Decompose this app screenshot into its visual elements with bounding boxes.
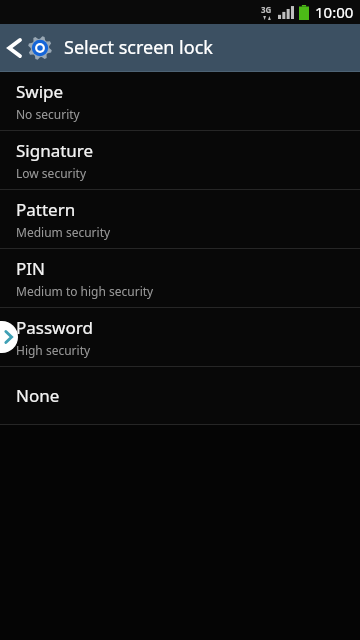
button[interactable]: PIN — [0, 249, 360, 307]
button[interactable]: Swipe — [0, 72, 360, 130]
staticText: Select screen lock — [64, 35, 213, 60]
staticText: Password — [16, 316, 93, 339]
staticText: 3G — [261, 4, 272, 15]
staticText: None — [16, 384, 60, 407]
staticText: Signature — [16, 139, 94, 162]
button[interactable]: Signature — [0, 131, 360, 189]
staticText: Medium security — [16, 224, 111, 240]
button[interactable]: Password — [0, 308, 360, 366]
staticText: 10:00 — [315, 2, 354, 22]
staticText: Swipe — [16, 80, 64, 103]
staticText: Low security — [16, 165, 87, 181]
staticText: High security — [16, 342, 91, 358]
staticText: Pattern — [16, 198, 76, 221]
button[interactable]: Navigate up — [0, 30, 56, 66]
staticText: Medium to high security — [16, 283, 154, 299]
staticText: No security — [16, 106, 80, 122]
button[interactable]: Pattern — [0, 190, 360, 248]
button[interactable]: None — [0, 367, 360, 424]
staticText: PIN — [16, 257, 45, 280]
